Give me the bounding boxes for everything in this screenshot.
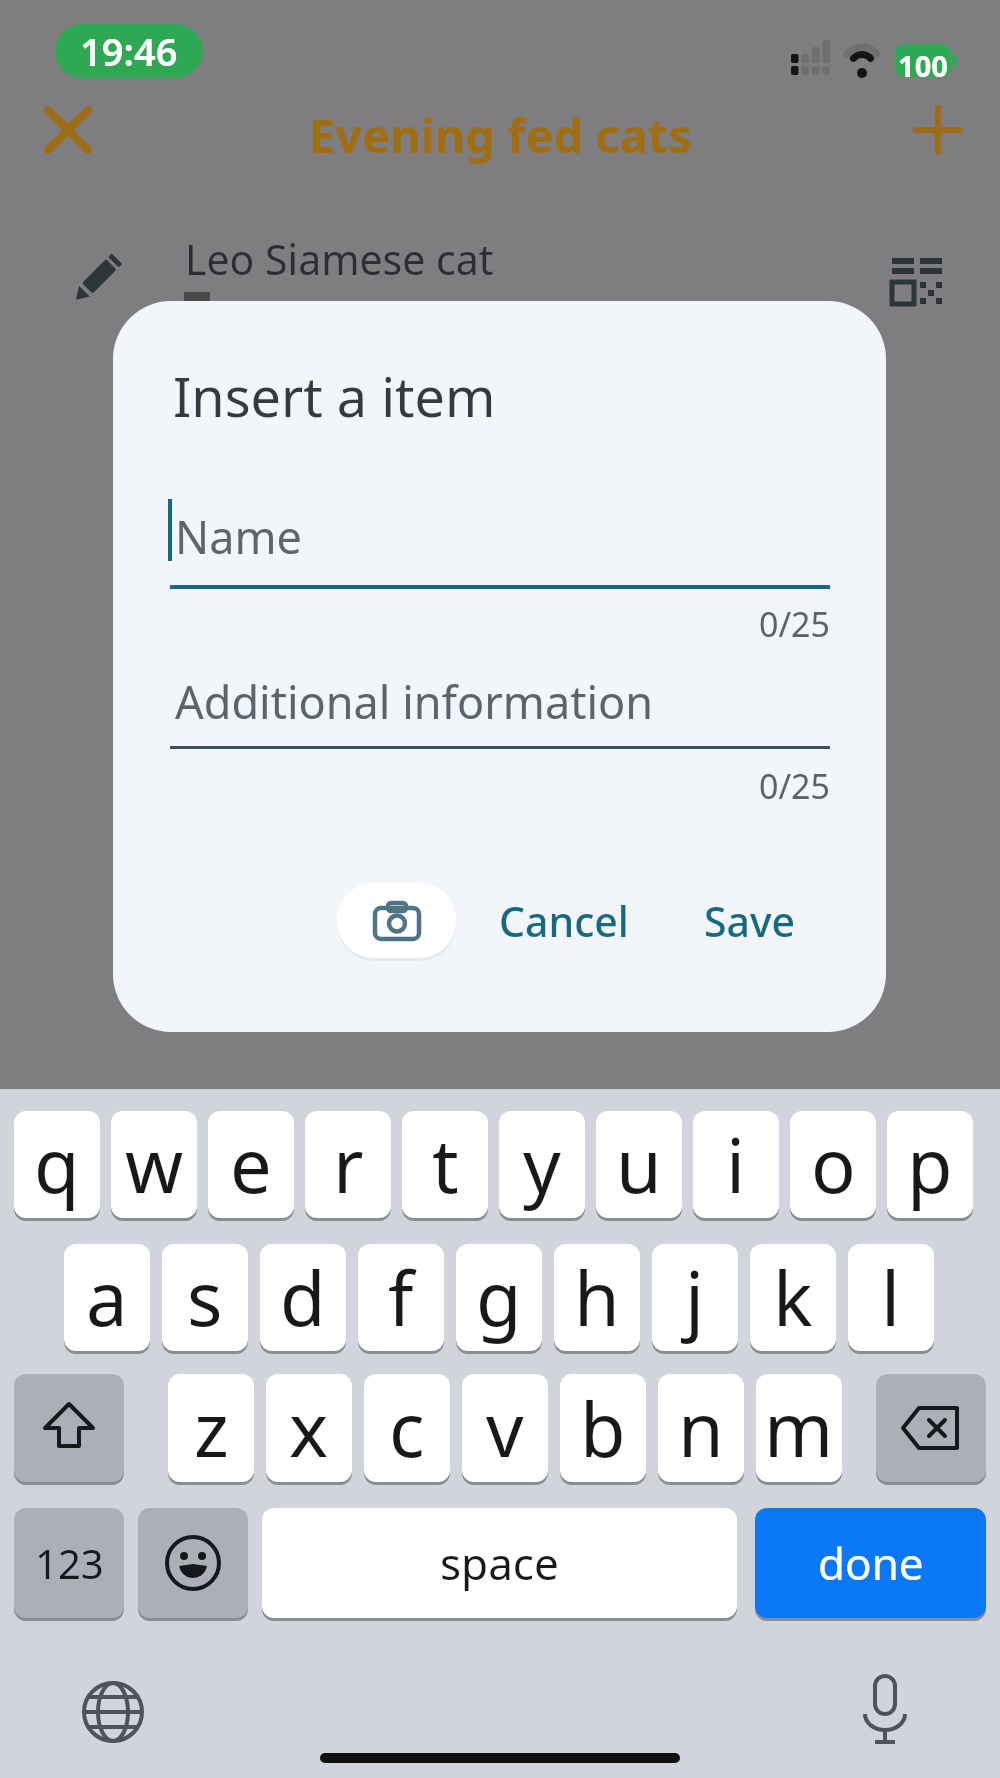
staticText: 100 <box>895 46 951 85</box>
button[interactable] <box>80 1679 146 1745</box>
button[interactable]: p <box>887 1111 973 1218</box>
button[interactable]: done <box>755 1508 986 1618</box>
staticText: v <box>486 1378 524 1479</box>
button[interactable]: e <box>208 1111 294 1218</box>
button[interactable]: v <box>462 1374 548 1482</box>
staticText: k <box>773 1247 813 1348</box>
staticText: Cancel <box>499 893 629 949</box>
button[interactable]: q <box>14 1111 100 1218</box>
button[interactable]: z <box>168 1374 254 1482</box>
staticText: d <box>280 1247 326 1348</box>
staticText: Save <box>704 893 796 949</box>
button[interactable]: t <box>402 1111 488 1218</box>
button[interactable] <box>876 1374 986 1482</box>
staticText: u <box>616 1114 662 1215</box>
button[interactable]: w <box>111 1111 197 1218</box>
staticText: 0/25 <box>170 763 830 809</box>
button[interactable]: o <box>790 1111 876 1218</box>
staticText: p <box>907 1114 953 1215</box>
staticText: space <box>440 1533 559 1593</box>
button[interactable]: Save <box>700 886 800 956</box>
staticText: Leo Siamese cat <box>185 231 494 287</box>
button[interactable]: u <box>596 1111 682 1218</box>
button[interactable]: y <box>499 1111 585 1218</box>
button[interactable] <box>855 1674 915 1754</box>
button[interactable]: l <box>848 1244 934 1351</box>
button[interactable]: k <box>750 1244 836 1351</box>
staticText: 0/25 <box>170 601 830 647</box>
button[interactable] <box>908 100 968 160</box>
button[interactable]: d <box>260 1244 346 1351</box>
staticText: y <box>523 1114 561 1215</box>
button[interactable]: x <box>266 1374 352 1482</box>
staticText: f <box>388 1247 414 1348</box>
staticText: m <box>764 1378 834 1479</box>
button[interactable]: g <box>456 1244 542 1351</box>
button[interactable]: r <box>305 1111 391 1218</box>
staticText: a <box>86 1247 128 1348</box>
button[interactable]: a <box>64 1244 150 1351</box>
button[interactable] <box>14 1374 124 1482</box>
button[interactable]: m <box>756 1374 842 1482</box>
staticText: e <box>230 1114 272 1215</box>
button[interactable]: Cancel <box>499 886 629 956</box>
staticText: w <box>125 1114 184 1215</box>
button[interactable] <box>138 1508 248 1618</box>
staticText: Name <box>175 506 302 567</box>
staticText: o <box>811 1114 856 1215</box>
button[interactable]: s <box>162 1244 248 1351</box>
button[interactable]: c <box>364 1374 450 1482</box>
staticText: j <box>685 1247 705 1348</box>
button[interactable]: space <box>262 1508 737 1618</box>
staticText: x <box>289 1378 329 1479</box>
button[interactable]: i <box>693 1111 779 1218</box>
staticText: Insert a item <box>173 359 496 433</box>
staticText: b <box>580 1378 626 1479</box>
button[interactable]: 123 <box>14 1508 124 1618</box>
staticText: done <box>818 1533 924 1593</box>
staticText: t <box>432 1114 459 1215</box>
staticText: q <box>34 1114 80 1215</box>
staticText: Additional information <box>175 671 654 732</box>
button[interactable] <box>337 883 456 958</box>
staticText: l <box>881 1247 901 1348</box>
staticText: r <box>333 1114 364 1215</box>
staticText: 19:46 <box>80 25 178 77</box>
staticText: s <box>187 1247 223 1348</box>
staticText: i <box>726 1114 746 1215</box>
button[interactable]: n <box>658 1374 744 1482</box>
staticText: h <box>574 1247 620 1348</box>
staticText: n <box>678 1378 724 1479</box>
staticText: z <box>194 1378 229 1479</box>
staticText: Evening fed cats <box>309 103 692 167</box>
button[interactable] <box>38 100 98 160</box>
button[interactable]: j <box>652 1244 738 1351</box>
button[interactable]: h <box>554 1244 640 1351</box>
staticText: 123 <box>35 1536 104 1590</box>
staticText: c <box>389 1378 425 1479</box>
staticText: g <box>476 1247 522 1348</box>
button[interactable]: b <box>560 1374 646 1482</box>
button[interactable]: f <box>358 1244 444 1351</box>
